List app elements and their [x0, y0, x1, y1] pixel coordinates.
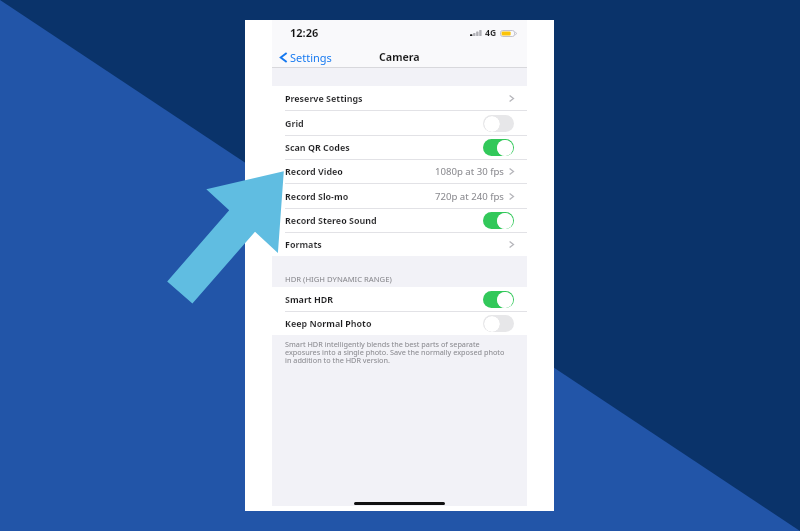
button[interactable]: Keep Normal Photo	[483, 315, 514, 332]
button[interactable]: Grid	[483, 115, 514, 132]
button[interactable]: Formats	[272, 232, 527, 256]
staticText: Grid	[285, 117, 304, 129]
button[interactable]: Grid	[272, 111, 527, 135]
staticText: Formats	[285, 238, 322, 250]
staticText: HDR (HIGH DYNAMIC RANGE)	[285, 274, 392, 284]
staticText: Record Slo-mo	[285, 190, 349, 202]
staticText: 720p at 240 fps	[435, 190, 504, 203]
staticText: Settings	[290, 50, 332, 65]
button[interactable]: Record Stereo Sound	[272, 208, 527, 232]
staticText: Record Video	[285, 165, 343, 177]
staticText: Preserve Settings	[285, 92, 363, 104]
staticText: 4G	[485, 27, 497, 39]
button[interactable]: Settings	[278, 48, 334, 67]
button[interactable]: Smart HDR	[483, 291, 514, 308]
staticText: Camera	[379, 50, 420, 64]
button[interactable]: Record Stereo Sound	[483, 212, 514, 229]
staticText: 12:26	[290, 25, 319, 40]
staticText: Smart HDR intelligently blends the best …	[285, 339, 509, 366]
staticText: Scan QR Codes	[285, 141, 350, 153]
button[interactable]: Record Slo-mo	[272, 184, 527, 208]
staticText: Keep Normal Photo	[285, 317, 372, 329]
button[interactable]: Scan QR Codes	[483, 139, 514, 156]
staticText: 1080p at 30 fps	[435, 165, 504, 178]
button[interactable]: Scan QR Codes	[272, 135, 527, 159]
button[interactable]: Preserve Settings	[272, 86, 527, 110]
staticText: Smart HDR	[285, 293, 334, 305]
button[interactable]: Keep Normal Photo	[272, 311, 527, 335]
button[interactable]: Smart HDR	[272, 287, 527, 311]
button[interactable]: Record Video	[272, 159, 527, 183]
staticText: Record Stereo Sound	[285, 214, 377, 226]
